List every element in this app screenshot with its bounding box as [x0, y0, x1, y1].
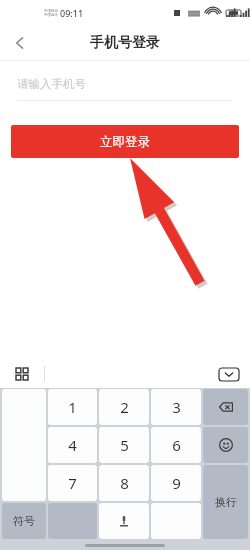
staticText: 换行	[215, 495, 237, 509]
staticText: 5	[120, 435, 129, 455]
button[interactable]: 立即登录	[11, 125, 239, 158]
button[interactable]: 6	[151, 427, 201, 463]
staticText: 7	[68, 473, 77, 493]
staticText: 请输入手机号	[17, 77, 86, 91]
button[interactable]: 2	[99, 389, 149, 425]
button[interactable]: 换行	[203, 465, 248, 539]
button[interactable]: Hide keyboard	[218, 367, 240, 382]
button[interactable]: Keyboard menu	[0, 360, 44, 388]
button[interactable]: 请输入手机号	[17, 77, 233, 101]
staticText: 2	[120, 397, 129, 417]
button[interactable]: 3	[151, 389, 201, 425]
staticText: 09:11	[60, 7, 84, 19]
button[interactable]: 7	[48, 465, 97, 501]
staticText: 4	[68, 435, 77, 455]
staticText: 中国电信	[44, 13, 58, 17]
button[interactable]: 9	[151, 465, 201, 501]
button[interactable]: Voice input	[99, 503, 149, 539]
button[interactable]: 5	[99, 427, 149, 463]
staticText: 8	[120, 473, 129, 493]
staticText: 符号	[13, 514, 35, 528]
button[interactable]: 4	[48, 427, 97, 463]
staticText: 立即登录	[100, 134, 150, 150]
button[interactable]: 8	[99, 465, 149, 501]
staticText: 手机号登录	[90, 34, 160, 52]
button[interactable]: Back	[6, 29, 34, 57]
staticText: 9	[172, 473, 181, 493]
staticText: 3	[172, 397, 181, 417]
button[interactable]: 1	[48, 389, 97, 425]
staticText: 6	[172, 435, 181, 455]
staticText: 1	[68, 397, 77, 417]
button[interactable]: Backspace	[203, 389, 248, 425]
button[interactable]: 符号	[2, 503, 46, 539]
button[interactable]: Emoji	[203, 427, 248, 463]
staticText: 中国移动	[44, 9, 58, 13]
